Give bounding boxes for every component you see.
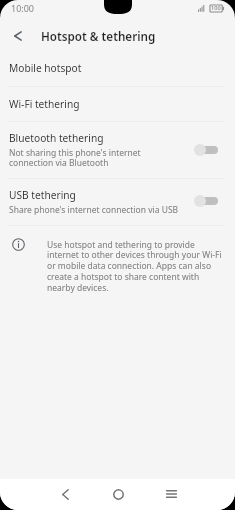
staticText: 10:00 [11, 2, 35, 14]
button[interactable]: Toggle [194, 143, 218, 156]
button[interactable]: Mobile hotspot [0, 50, 235, 86]
staticText: Share phone's internet connection via US… [9, 204, 179, 216]
button[interactable]: Recent apps [157, 480, 185, 508]
button[interactable]: Wi-Fi tethering [0, 87, 235, 121]
staticText: Not sharing this phone's internet connec… [9, 147, 141, 169]
button[interactable]: Home [104, 480, 132, 508]
staticText: Use hotspot and tethering to provide int… [47, 239, 222, 294]
staticText: Hotspot & tethering [41, 28, 156, 44]
button[interactable]: Back [51, 480, 79, 508]
button[interactable]: Toggle [194, 194, 218, 207]
button[interactable]: Bluetooth tethering [0, 122, 235, 178]
staticText: Mobile hotspot [9, 61, 82, 75]
staticText: Bluetooth tethering [9, 131, 104, 145]
staticText: USB tethering [9, 188, 76, 202]
staticText: Wi-Fi tethering [9, 97, 80, 111]
staticText: 100 [211, 4, 221, 12]
button[interactable]: Back [4, 22, 32, 50]
button[interactable]: USB tethering [0, 179, 235, 225]
